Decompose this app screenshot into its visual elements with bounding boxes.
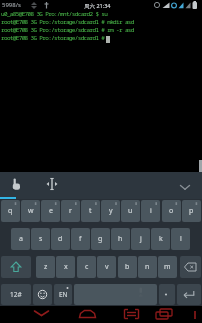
- staticText: 周六 21:34: [84, 2, 111, 10]
- button[interactable]: [177, 284, 201, 305]
- button[interactable]: n: [138, 256, 157, 278]
- button[interactable]: [193, 310, 197, 320]
- staticText: p: [189, 206, 194, 216]
- button[interactable]: x: [56, 256, 75, 278]
- staticText: z: [44, 262, 48, 272]
- staticText: root@E708 3G Pro:/storage/sdcard1 # rm -…: [1, 26, 134, 34]
- button[interactable]: q: [1, 200, 20, 222]
- button[interactable]: d: [51, 228, 70, 250]
- staticText: u0_a85@E708 3G Pro:/mnt/sdcard2 $ su: [1, 10, 108, 18]
- staticText: e: [49, 206, 53, 216]
- button[interactable]: [1, 256, 31, 278]
- button[interactable]: p: [182, 200, 201, 222]
- button[interactable]: y: [101, 200, 120, 222]
- staticText: EN: [59, 290, 68, 299]
- staticText: 5998/s: [2, 1, 21, 9]
- staticText: f: [79, 234, 82, 244]
- staticText: n: [145, 262, 150, 272]
- staticText: k: [159, 234, 163, 244]
- staticText: q: [8, 206, 13, 216]
- staticText: h: [118, 234, 123, 244]
- button[interactable]: t: [81, 200, 100, 222]
- staticText: b: [125, 262, 130, 272]
- button[interactable]: m: [158, 256, 177, 278]
- button[interactable]: j: [131, 228, 150, 250]
- staticText: root@E708 3G Pro:/storage/sdcard1 #: [1, 34, 105, 42]
- button[interactable]: [150, 306, 178, 323]
- button[interactable]: c: [77, 256, 96, 278]
- staticText: x: [64, 262, 68, 272]
- button[interactable]: e: [41, 200, 60, 222]
- button[interactable]: l: [171, 228, 190, 250]
- staticText: s: [39, 234, 43, 244]
- button[interactable]: b: [118, 256, 137, 278]
- staticText: t: [89, 206, 92, 216]
- button[interactable]: [159, 284, 175, 305]
- button[interactable]: [118, 306, 146, 323]
- staticText: w: [28, 206, 34, 216]
- button[interactable]: k: [151, 228, 170, 250]
- button[interactable]: a: [11, 228, 30, 250]
- button[interactable]: EN: [54, 284, 72, 305]
- button[interactable]: [174, 176, 198, 196]
- button[interactable]: w: [21, 200, 40, 222]
- button[interactable]: [28, 306, 56, 323]
- button[interactable]: u: [121, 200, 140, 222]
- staticText: i: [150, 206, 152, 216]
- staticText: m: [164, 262, 171, 272]
- button[interactable]: r: [61, 200, 80, 222]
- staticText: y: [109, 206, 113, 216]
- button[interactable]: [40, 174, 64, 196]
- button[interactable]: [4, 174, 28, 196]
- button[interactable]: i: [141, 200, 160, 222]
- staticText: l: [180, 234, 182, 244]
- staticText: a: [19, 234, 23, 244]
- staticText: root@E708 3G Pro:/storage/sdcard1 # mkdi…: [1, 18, 134, 26]
- button[interactable]: h: [111, 228, 130, 250]
- staticText: r: [69, 206, 72, 216]
- button[interactable]: 12#: [1, 284, 31, 305]
- staticText: 12#: [10, 290, 22, 299]
- staticText: o: [169, 206, 174, 216]
- staticText: v: [105, 262, 109, 272]
- button[interactable]: z: [36, 256, 55, 278]
- button[interactable]: [180, 256, 201, 278]
- button[interactable]: g: [91, 228, 110, 250]
- button[interactable]: [74, 306, 102, 323]
- button[interactable]: [33, 284, 52, 305]
- staticText: u: [128, 206, 133, 216]
- button[interactable]: v: [97, 256, 116, 278]
- button[interactable]: f: [71, 228, 90, 250]
- staticText: d: [58, 234, 63, 244]
- staticText: c: [85, 262, 89, 272]
- staticText: j: [140, 234, 142, 244]
- staticText: g: [98, 234, 103, 244]
- button[interactable]: o: [162, 200, 181, 222]
- button[interactable]: s: [31, 228, 50, 250]
